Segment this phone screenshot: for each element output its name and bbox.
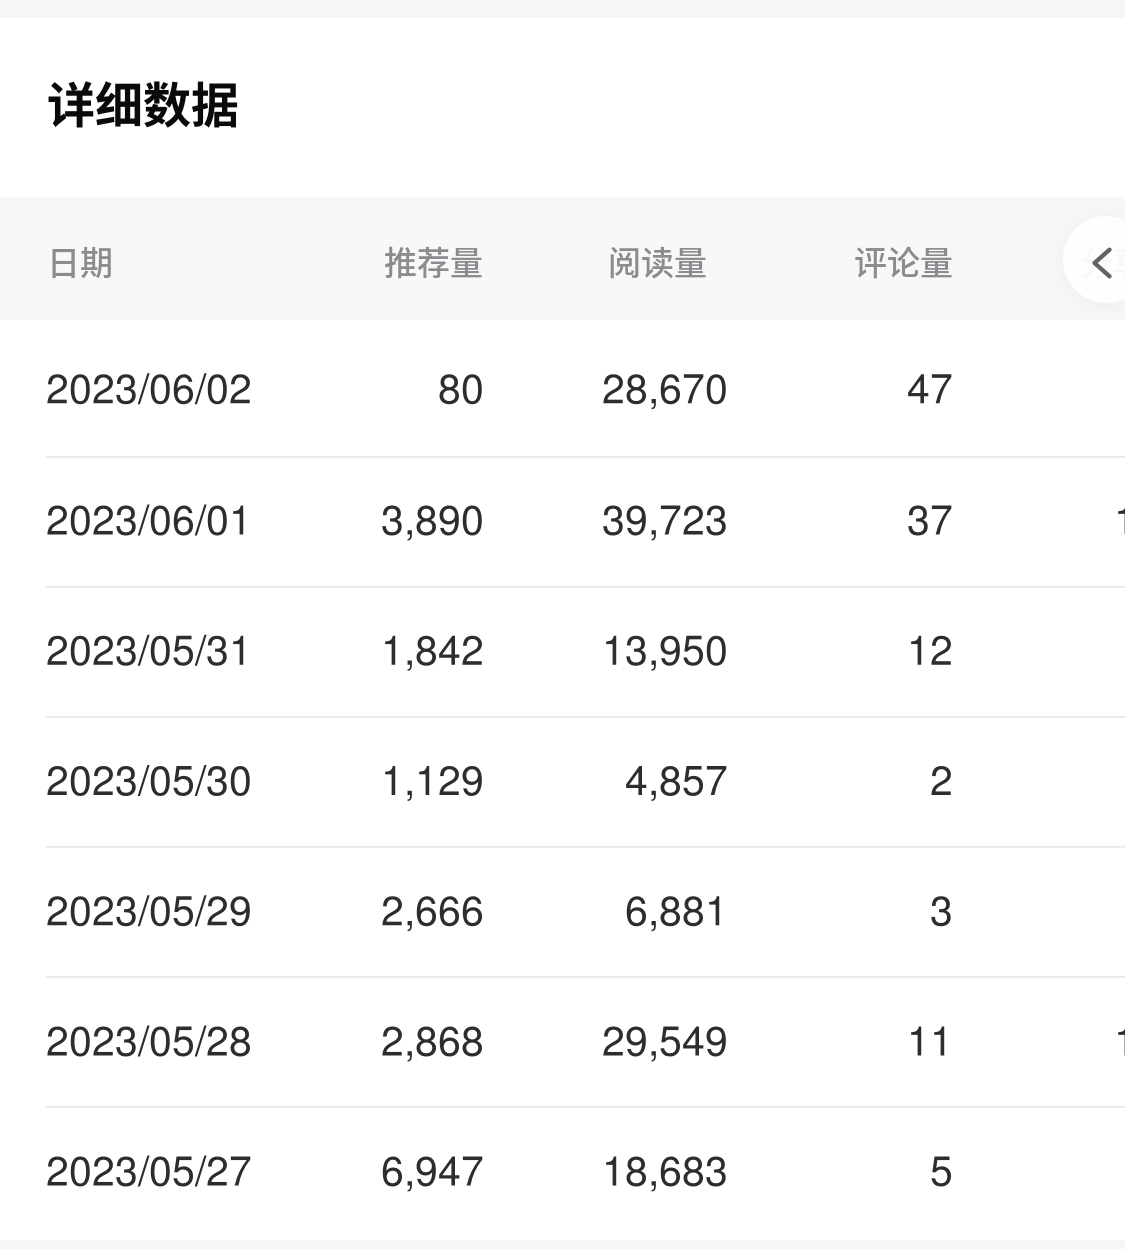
staticText: 3,890 — [381, 487, 484, 546]
staticText: 12 — [907, 618, 953, 676]
staticText: 112 — [1114, 487, 1125, 546]
staticText: 108 — [1114, 1008, 1125, 1067]
staticText: 2 — [930, 748, 953, 807]
staticText: 2,868 — [381, 1008, 484, 1067]
staticText: 2023/05/27 — [46, 1138, 252, 1197]
staticText: 1,842 — [381, 618, 484, 676]
staticText: 18,683 — [602, 1138, 728, 1197]
staticText: 2023/05/30 — [46, 748, 252, 807]
button[interactable]: Scroll left — [1063, 216, 1125, 303]
staticText: 2023/05/29 — [46, 878, 252, 937]
staticText: 4,857 — [625, 748, 728, 807]
staticText: 评论量 — [854, 237, 953, 284]
staticText: 2023/05/31 — [46, 618, 252, 676]
staticText: 6,881 — [625, 878, 728, 937]
staticText: 39,723 — [602, 487, 728, 546]
staticText: 29,549 — [602, 1008, 728, 1067]
staticText: 37 — [907, 487, 953, 546]
staticText: 6,947 — [381, 1138, 484, 1197]
staticText: 28,670 — [602, 356, 728, 415]
staticText: 推荐量 — [384, 237, 483, 284]
staticText: 13,950 — [602, 618, 728, 676]
staticText: 11 — [907, 1008, 953, 1067]
staticText: 日期 — [47, 237, 113, 284]
staticText: 47 — [907, 356, 953, 415]
staticText: 80 — [438, 356, 484, 415]
staticText: 5 — [930, 1138, 953, 1197]
staticText: 2023/06/02 — [46, 356, 252, 415]
staticText: 分享量 — [1080, 237, 1125, 284]
staticText: 2023/05/28 — [46, 1008, 252, 1067]
staticText: 详细数据 — [47, 67, 239, 136]
staticText: 2,666 — [381, 878, 484, 937]
staticText: 2023/06/01 — [46, 487, 252, 546]
staticText: 3 — [930, 878, 953, 937]
staticText: 阅读量 — [608, 237, 707, 284]
staticText: 1,129 — [381, 748, 484, 807]
